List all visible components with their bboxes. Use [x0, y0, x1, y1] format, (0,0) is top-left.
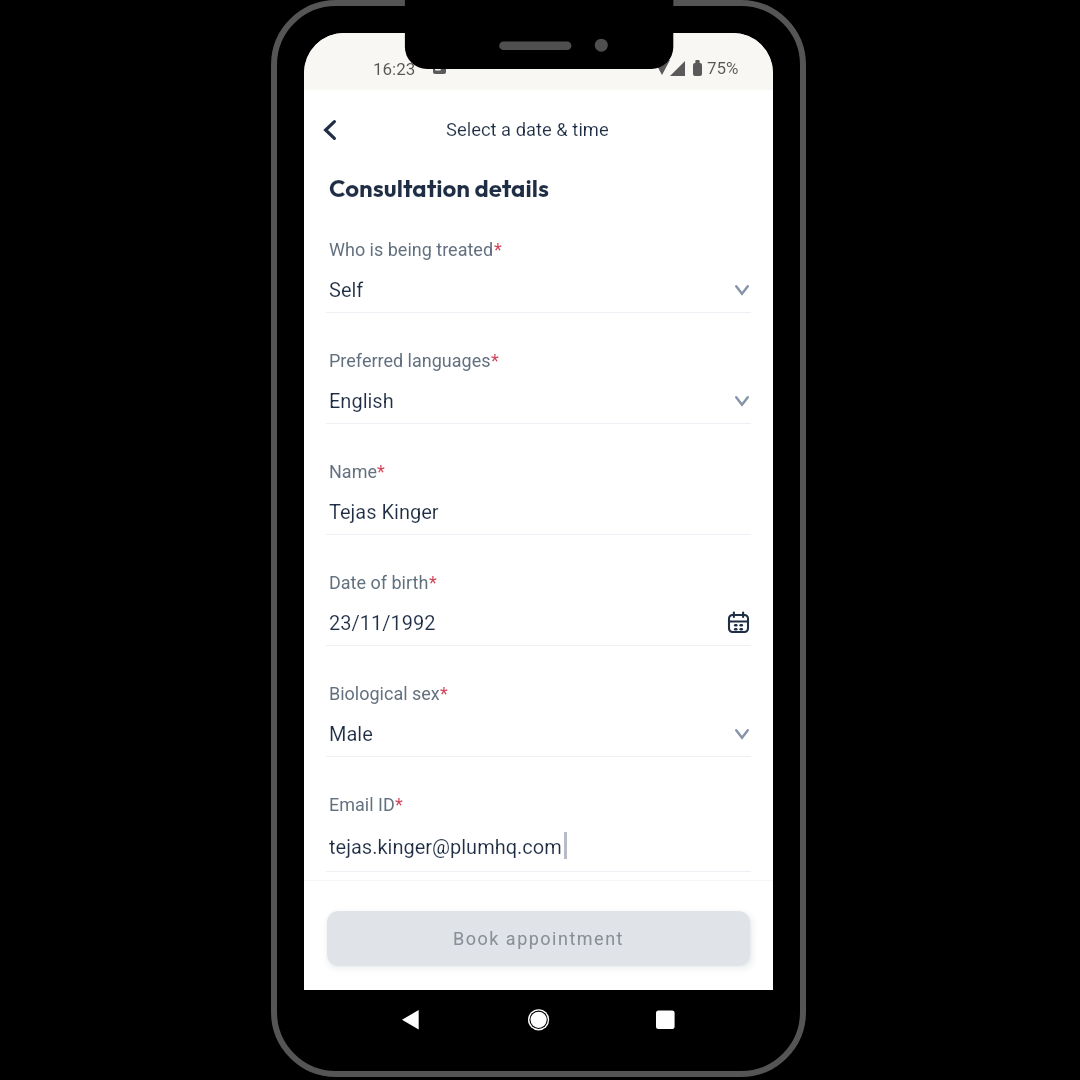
button[interactable]: Book appointment: [327, 911, 750, 966]
other: Open Who is being treated options: [735, 285, 749, 295]
other: Open Preferred languages options: [735, 396, 749, 406]
staticText: Name: [329, 461, 377, 482]
staticText: *: [494, 239, 502, 260]
button[interactable]: Biological sex: [304, 683, 773, 794]
staticText: Self: [329, 278, 364, 301]
staticText: Email ID: [329, 794, 395, 815]
other: Open Biological sex options: [735, 729, 749, 739]
staticText: Male: [329, 722, 373, 745]
staticText: Consultation details: [329, 173, 549, 203]
staticText: Select a date & time: [446, 119, 609, 141]
staticText: 16:23: [373, 59, 416, 79]
other: Pick date: [728, 612, 749, 633]
staticText: *: [395, 794, 403, 815]
staticText: Book appointment: [453, 928, 624, 949]
button[interactable]: Name: [304, 461, 773, 572]
staticText: 23/11/1992: [329, 611, 436, 634]
staticText: *: [377, 461, 385, 482]
staticText: Tejas Kinger: [329, 500, 439, 523]
staticText: *: [440, 683, 448, 704]
button[interactable]: Who is being treated: [304, 239, 773, 350]
button[interactable]: Date of birth: [304, 572, 773, 683]
staticText: 75%: [707, 58, 739, 78]
staticText: tejas.kinger@plumhq.com: [329, 835, 562, 858]
staticText: Date of birth: [329, 572, 429, 593]
staticText: *: [429, 572, 437, 593]
staticText: Who is being treated: [329, 239, 494, 260]
button[interactable]: Email ID: [304, 794, 773, 909]
button[interactable]: Back: [309, 109, 351, 151]
button[interactable]: Preferred languages: [304, 350, 773, 461]
staticText: English: [329, 389, 394, 412]
staticText: *: [491, 350, 499, 371]
staticText: Preferred languages: [329, 350, 491, 371]
staticText: Biological sex: [329, 683, 440, 704]
